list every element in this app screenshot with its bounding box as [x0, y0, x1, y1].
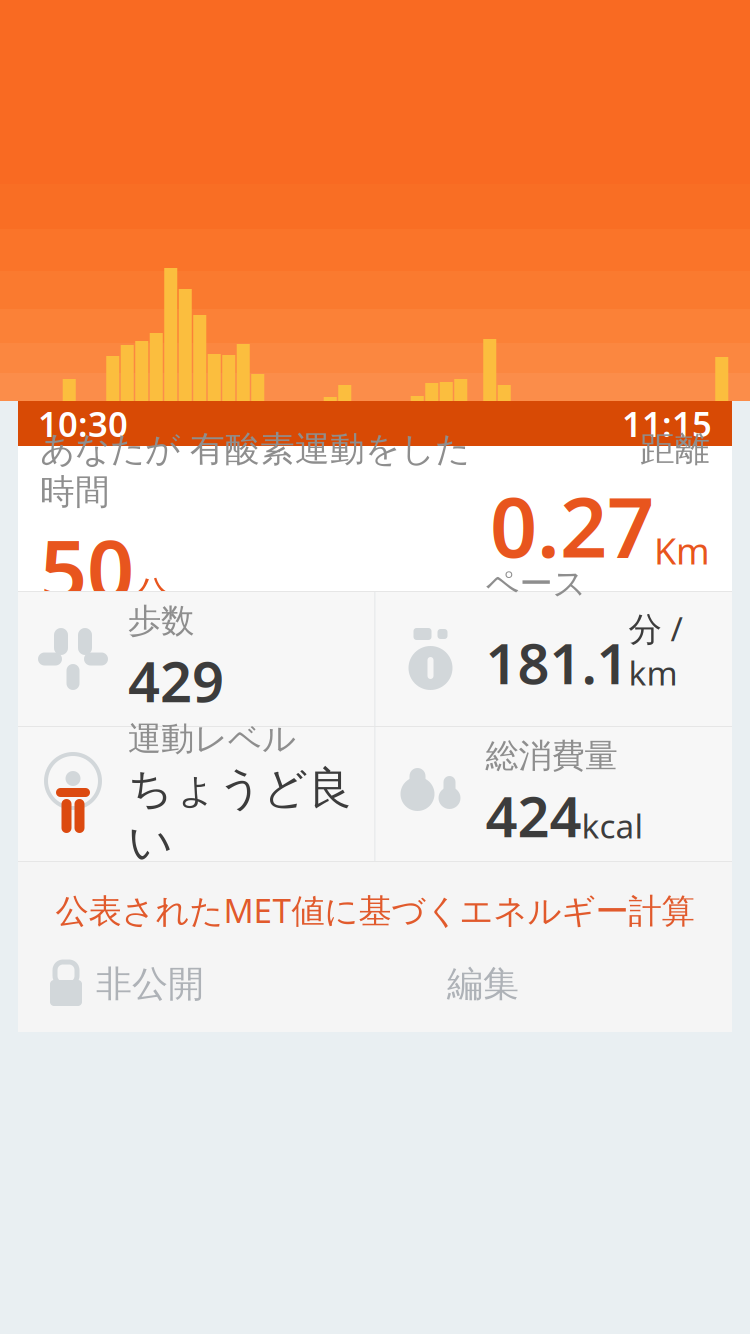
staticText: 11:15: [622, 400, 712, 446]
staticText: 50: [40, 513, 134, 623]
button[interactable]: 公表されたMET値に基づくエネルギー計算: [18, 873, 732, 947]
staticText: 10:30: [38, 400, 128, 446]
staticText: 公表されたMET値に基づくエネルギー計算: [55, 888, 694, 932]
staticText: 総消費量: [485, 735, 617, 776]
staticText: 424: [485, 778, 581, 853]
staticText: kcal: [581, 803, 643, 848]
staticText: 非公開: [96, 962, 204, 1006]
staticText: 0.27: [490, 471, 654, 580]
staticText: ちょうど良い: [128, 761, 352, 869]
staticText: 歩数: [128, 600, 194, 641]
staticText: 距離: [640, 428, 710, 471]
staticText: 分: [134, 573, 170, 617]
staticText: ペース: [485, 563, 586, 604]
staticText: Km: [654, 527, 710, 574]
button[interactable]: 編集: [403, 947, 563, 1021]
staticText: 429: [128, 643, 224, 718]
button[interactable]: 非公開: [18, 947, 234, 1021]
staticText: 分 / km: [628, 606, 682, 695]
staticText: 編集: [447, 962, 519, 1006]
staticText: 181.1: [485, 625, 628, 700]
staticText: あなたが 有酸素運動をした 時間: [40, 428, 470, 513]
staticText: 運動レベル: [128, 718, 296, 759]
